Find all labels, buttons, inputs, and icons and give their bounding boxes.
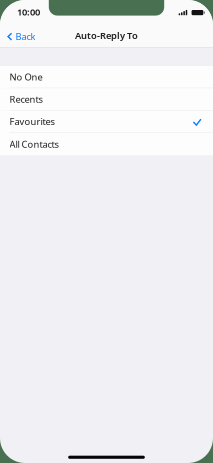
button[interactable]: No One — [0, 66, 213, 88]
staticText: All Contacts — [10, 138, 59, 150]
button[interactable]: Back — [0, 24, 41, 47]
staticText: No One — [10, 71, 43, 83]
button[interactable]: Recents — [0, 88, 213, 111]
staticText: Recents — [10, 93, 43, 105]
staticText: 10:00 — [17, 6, 40, 18]
button[interactable]: Favourites — [0, 111, 213, 133]
staticText: Favourites — [10, 115, 55, 128]
staticText: Back — [15, 30, 35, 43]
button[interactable]: All Contacts — [0, 133, 213, 155]
staticText: Auto-Reply To — [75, 29, 138, 42]
